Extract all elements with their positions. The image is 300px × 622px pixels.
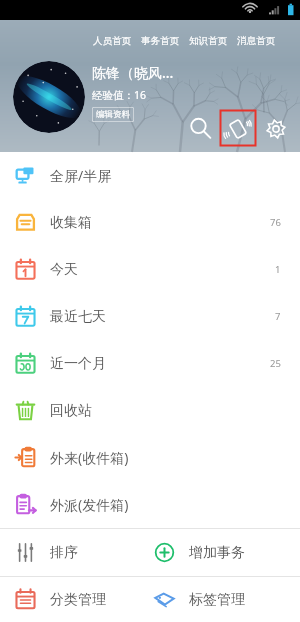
button[interactable]: 人员首页 — [92, 33, 132, 49]
button[interactable]: 分类管理 — [0, 577, 150, 622]
staticText: 事务首页 — [141, 35, 179, 47]
button[interactable]: Search — [181, 110, 219, 148]
button[interactable]: Shake to refresh — [219, 110, 257, 148]
button[interactable]: Settings — [257, 110, 295, 148]
button[interactable]: 事务首页 — [140, 33, 180, 49]
button[interactable]: 最近七天 — [0, 293, 300, 340]
button[interactable]: 消息首页 — [236, 33, 276, 49]
button[interactable]: 近一个月 — [0, 340, 300, 387]
button[interactable]: Profile avatar — [13, 61, 85, 133]
staticText: 回收站 — [50, 402, 92, 420]
staticText: 1 — [275, 263, 281, 276]
button[interactable]: 收集箱 — [0, 199, 300, 246]
button[interactable]: 增加事务 — [150, 529, 300, 576]
staticText: 今天 — [50, 261, 78, 279]
staticText: 陈锋（晓风... — [92, 63, 174, 82]
staticText: 人员首页 — [93, 35, 131, 47]
button[interactable]: 回收站 — [0, 387, 300, 434]
button[interactable]: 今天 — [0, 246, 300, 293]
staticText: 25 — [270, 357, 281, 370]
staticText: 7 — [275, 310, 281, 323]
button[interactable]: 外来(收件箱) — [0, 434, 300, 481]
staticText: 知识首页 — [189, 35, 227, 47]
staticText: 编辑资料 — [96, 109, 130, 120]
button[interactable]: 全屏/半屏 — [0, 152, 300, 199]
staticText: 外派(发件箱) — [50, 495, 129, 514]
staticText: 近一个月 — [50, 355, 106, 373]
staticText: 经验值：16 — [92, 88, 147, 102]
button[interactable]: 标签管理 — [150, 577, 300, 622]
button[interactable]: 知识首页 — [188, 33, 228, 49]
staticText: 消息首页 — [237, 35, 275, 47]
button[interactable]: 排序 — [0, 529, 150, 576]
staticText: 收集箱 — [50, 214, 92, 232]
staticText: 分类管理 — [50, 591, 106, 609]
staticText: 标签管理 — [189, 591, 245, 609]
staticText: 外来(收件箱) — [50, 448, 129, 467]
staticText: 增加事务 — [189, 544, 245, 562]
staticText: 排序 — [50, 544, 78, 562]
staticText: 全屏/半屏 — [50, 166, 112, 185]
staticText: 76 — [270, 216, 281, 229]
button[interactable]: 编辑资料 — [92, 107, 134, 122]
button[interactable]: 外派(发件箱) — [0, 481, 300, 528]
staticText: 最近七天 — [50, 308, 106, 326]
